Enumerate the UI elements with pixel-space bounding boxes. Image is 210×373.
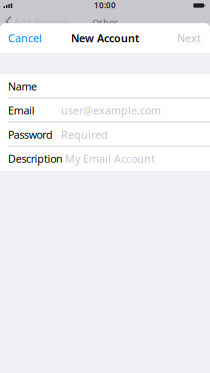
button[interactable]: Cancel bbox=[0, 24, 42, 52]
button[interactable]: Name bbox=[0, 74, 210, 98]
staticText: Required bbox=[61, 127, 108, 142]
button[interactable]: Next bbox=[177, 24, 210, 52]
staticText: 10:00 bbox=[94, 0, 116, 10]
staticText: Password bbox=[8, 127, 53, 142]
staticText: Name bbox=[8, 79, 37, 93]
staticText: Next bbox=[177, 31, 201, 45]
button[interactable]: Password bbox=[0, 122, 210, 147]
staticText: New Account bbox=[71, 31, 139, 45]
staticText: Cancel bbox=[8, 31, 42, 45]
button[interactable]: Description bbox=[0, 147, 210, 171]
staticText: My Email Account bbox=[65, 152, 155, 166]
staticText: user@example.com bbox=[61, 103, 161, 117]
staticText: Add Account bbox=[14, 16, 69, 28]
staticText: Other bbox=[92, 16, 118, 28]
button[interactable]: Back to Add Account bbox=[0, 16, 69, 28]
staticText: Description bbox=[8, 152, 63, 166]
staticText: Email bbox=[8, 103, 35, 117]
button[interactable]: Email bbox=[0, 98, 210, 122]
